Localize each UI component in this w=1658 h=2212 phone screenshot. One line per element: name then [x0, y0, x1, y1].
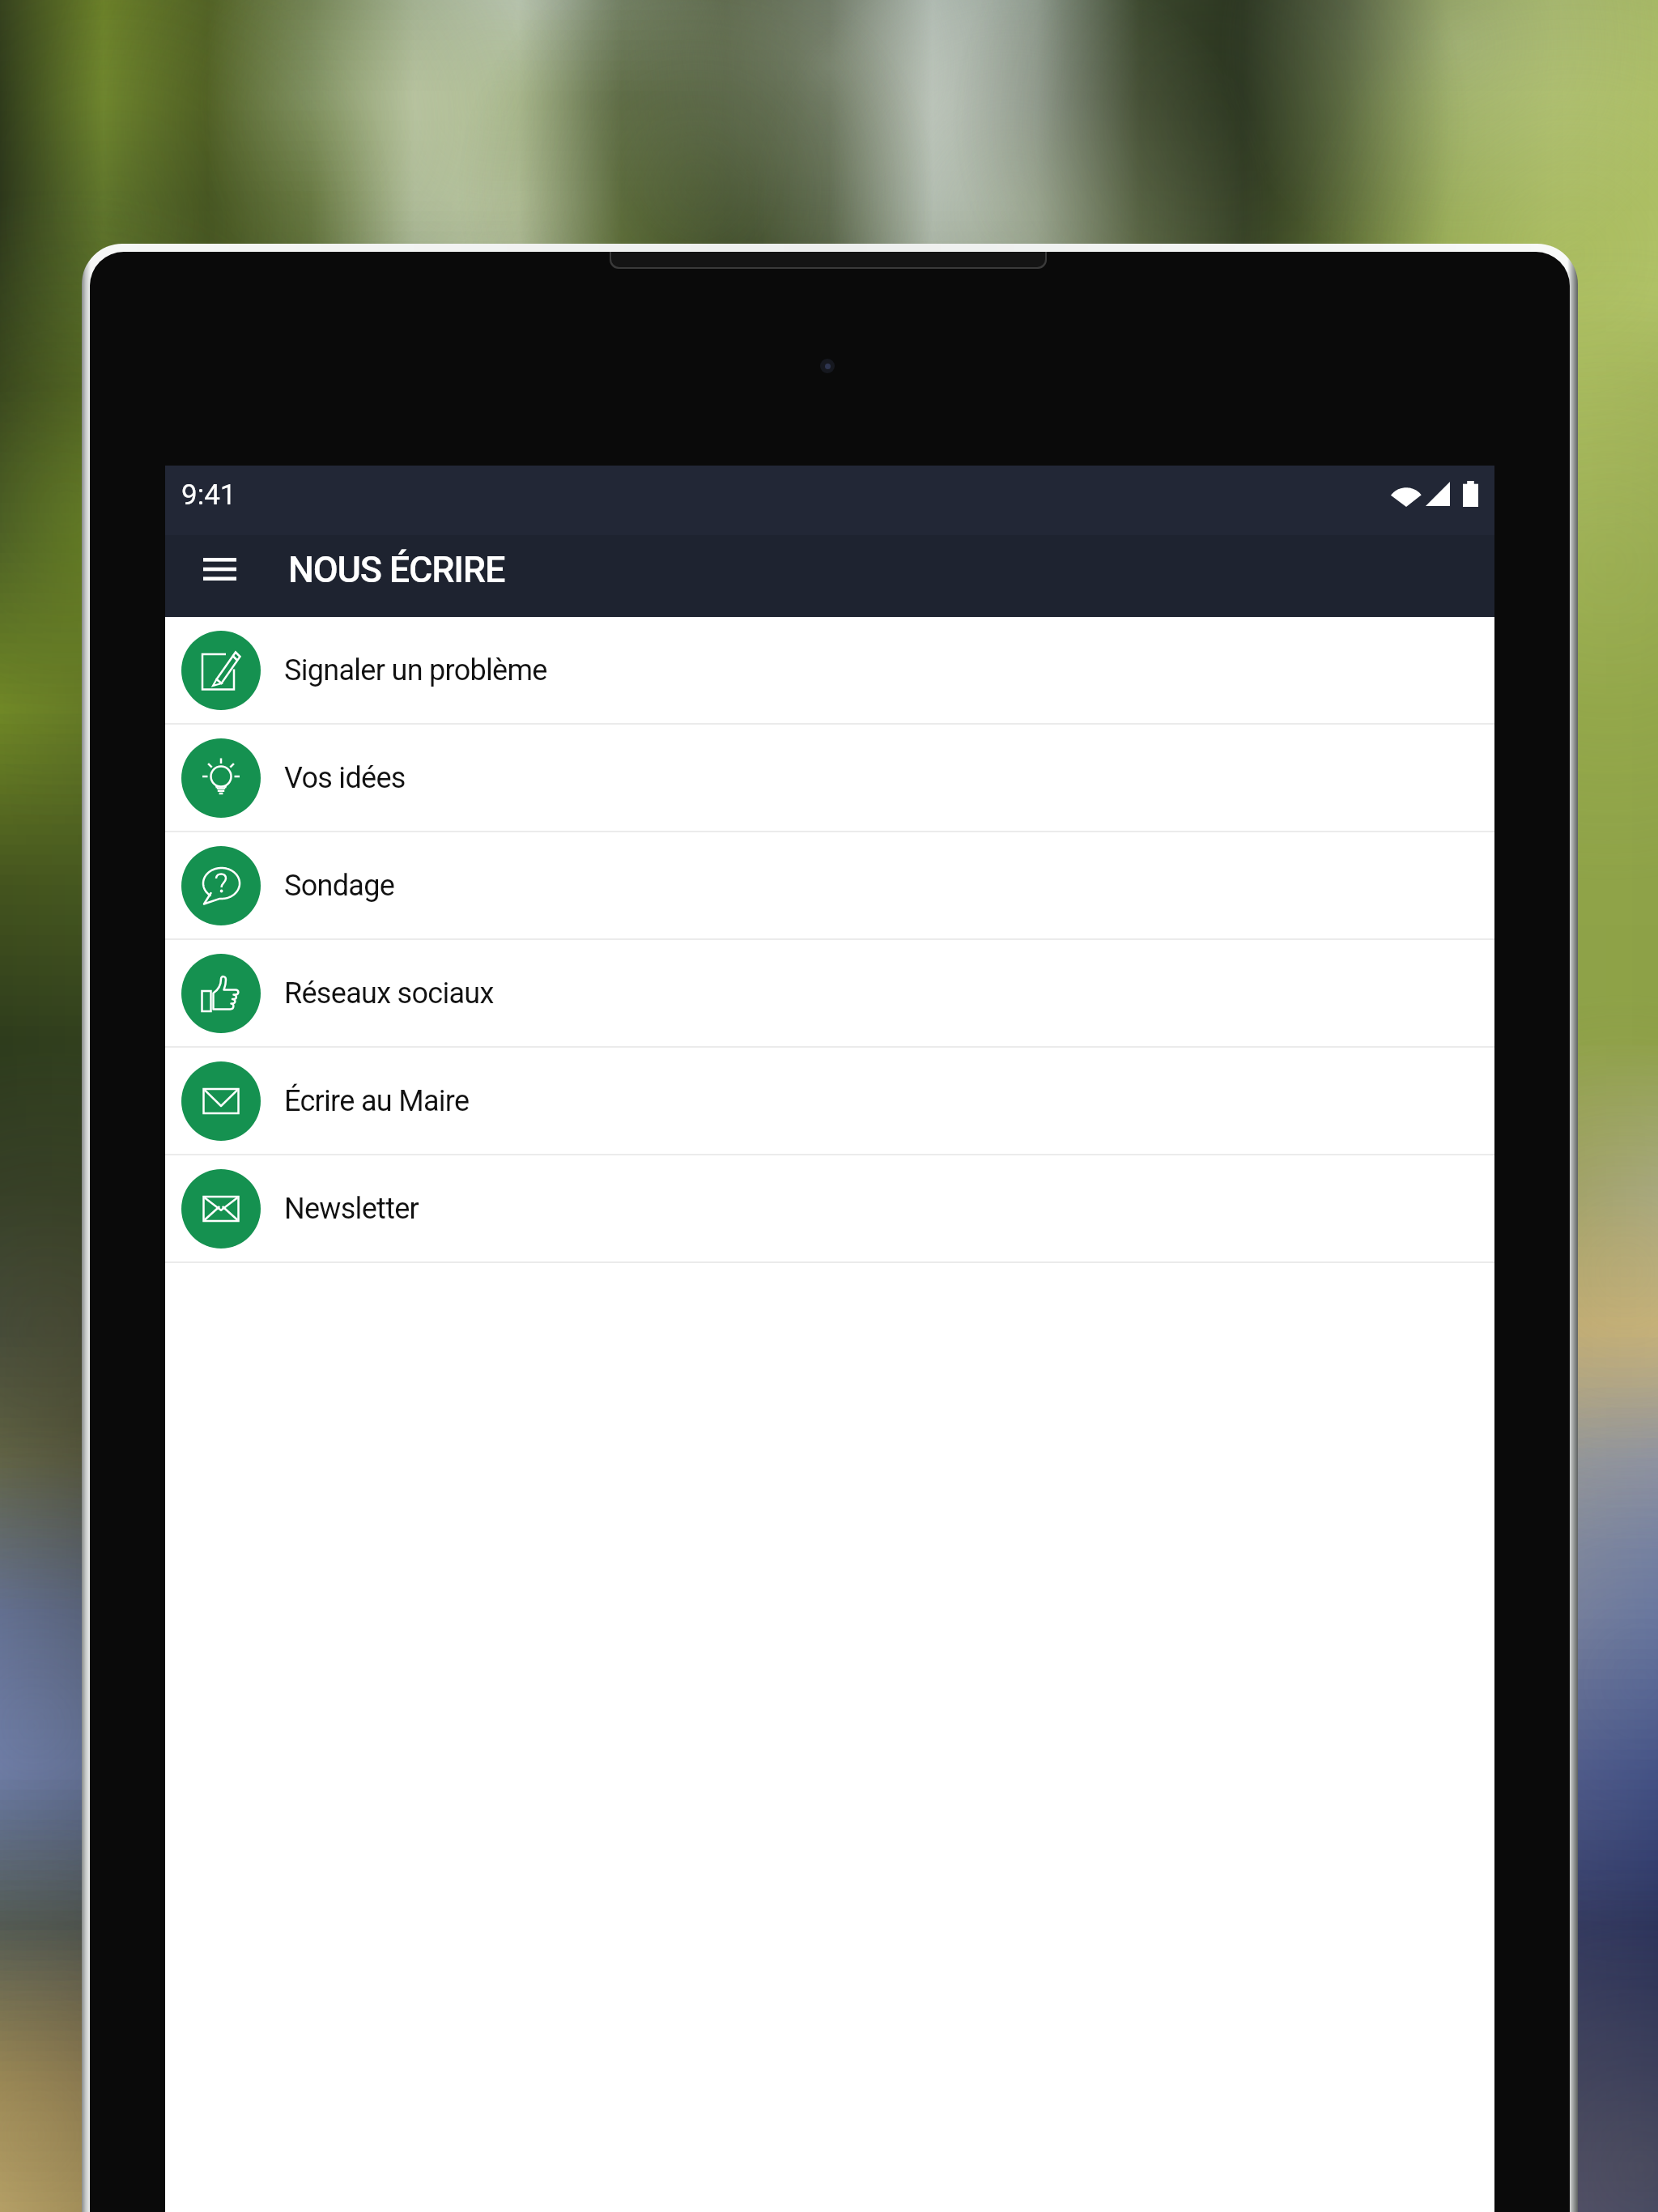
button[interactable]: Sondage [165, 832, 1494, 938]
staticText: Réseaux sociaux [284, 976, 494, 1010]
button[interactable]: Vos idées [165, 725, 1494, 831]
button[interactable]: Newsletter [165, 1155, 1494, 1261]
button[interactable]: Signaler un problème [165, 617, 1494, 723]
staticText: 9:41 [181, 479, 236, 512]
button[interactable]: Écrire au Maire [165, 1048, 1494, 1154]
staticText: Signaler un problème [284, 653, 547, 687]
button[interactable]: Réseaux sociaux [165, 940, 1494, 1046]
staticText: Vos idées [284, 761, 406, 795]
button[interactable]: Ouvrir le menu [190, 540, 249, 598]
staticText: Newsletter [284, 1192, 419, 1226]
staticText: Écrire au Maire [284, 1084, 470, 1118]
staticText: NOUS ÉCRIRE [288, 548, 505, 591]
staticText: Sondage [284, 869, 395, 903]
